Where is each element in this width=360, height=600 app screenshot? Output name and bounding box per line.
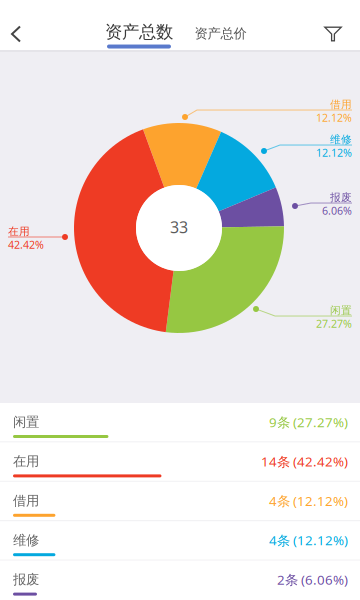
staticText: 9条 (27.27%) <box>269 413 348 431</box>
button[interactable]: 闲置 <box>0 403 360 442</box>
staticText: 维修 <box>330 133 352 146</box>
staticText: 12.12% <box>316 145 352 160</box>
staticText: 4条 (12.12%) <box>269 531 348 549</box>
staticText: 报废 <box>13 571 39 588</box>
staticText: 4条 (12.12%) <box>269 492 348 510</box>
staticText: 14条 (42.42%) <box>261 452 348 470</box>
button[interactable]: 报废 <box>0 561 360 600</box>
button[interactable]: 维修 <box>0 521 360 561</box>
staticText: 在用 <box>8 225 30 238</box>
staticText: 33 <box>170 216 188 238</box>
staticText: 6.06% <box>322 203 352 218</box>
button[interactable]: 借用 <box>0 482 360 521</box>
staticText: 闲置 <box>330 304 352 317</box>
staticText: 资产总价 <box>194 25 246 42</box>
staticText: 12.12% <box>316 110 352 125</box>
staticText: 资产总数 <box>105 21 173 43</box>
button[interactable]: Back <box>0 11 39 57</box>
staticText: 维修 <box>13 532 39 548</box>
staticText: 报废 <box>330 191 352 204</box>
staticText: 27.27% <box>316 316 352 331</box>
staticText: 借用 <box>330 98 352 111</box>
button[interactable]: 资产总价 <box>185 13 255 53</box>
button[interactable]: Filter <box>310 11 356 57</box>
staticText: 闲置 <box>13 414 39 430</box>
staticText: 借用 <box>13 493 39 509</box>
staticText: 42.42% <box>8 237 44 252</box>
staticText: 2条 (6.06%) <box>277 571 348 588</box>
button[interactable]: 资产总数 <box>96 0 182 52</box>
staticText: 在用 <box>13 453 39 470</box>
button[interactable]: 在用 <box>0 442 360 482</box>
